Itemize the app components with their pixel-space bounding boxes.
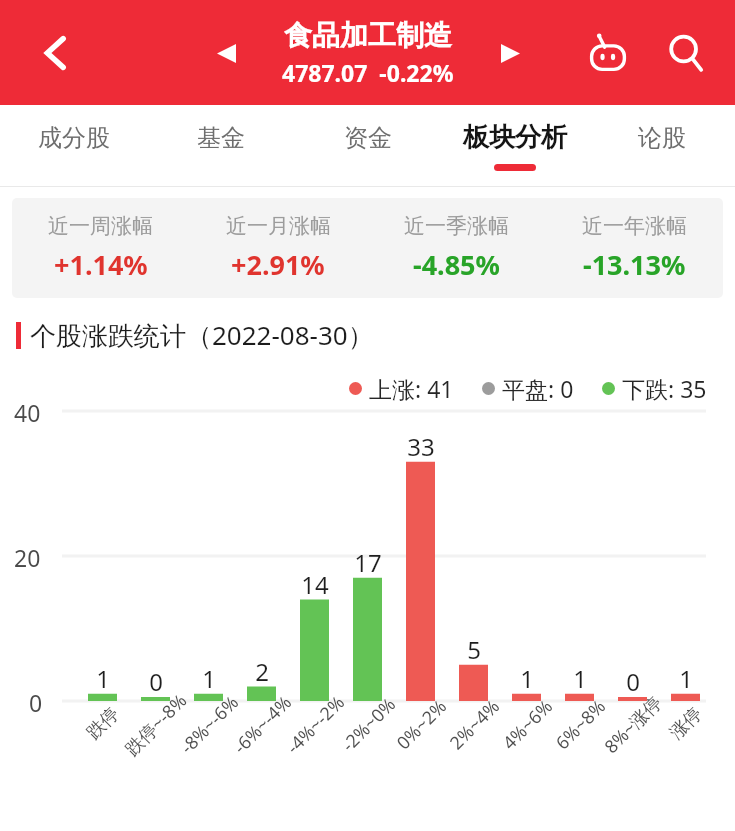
- staticText: 跌停~-8%: [120, 688, 192, 761]
- staticText: 0: [618, 665, 648, 698]
- button[interactable]: AI assistant: [579, 24, 637, 82]
- staticText: -13.13%: [583, 246, 686, 283]
- staticText: 近一周涨幅: [48, 213, 153, 239]
- button[interactable]: 近一季涨幅: [367, 213, 545, 283]
- staticText: 17: [353, 546, 383, 579]
- staticText: 4%~6%: [497, 694, 558, 755]
- staticText: 0: [29, 687, 43, 718]
- staticText: 下跌: 35: [622, 373, 707, 404]
- staticText: 2%~4%: [444, 694, 505, 755]
- staticText: 1: [671, 662, 701, 695]
- button[interactable]: 近一周涨幅: [12, 213, 189, 283]
- staticText: 资金: [344, 123, 392, 153]
- button[interactable]: Next sector: [487, 30, 533, 76]
- button[interactable]: 板块分析: [441, 105, 588, 187]
- button[interactable]: 平盘: 0: [482, 373, 574, 404]
- staticText: -4%~-2%: [281, 690, 350, 759]
- staticText: 上涨: 41: [369, 373, 454, 404]
- staticText: 2: [247, 655, 277, 688]
- button[interactable]: 基金: [147, 105, 294, 187]
- staticText: 个股涨跌统计（2022-08-30）: [30, 317, 374, 353]
- button[interactable]: Previous sector: [203, 30, 249, 76]
- staticText: 跌停: [82, 703, 124, 744]
- staticText: 平盘: 0: [502, 373, 574, 404]
- staticText: 14: [300, 568, 330, 601]
- staticText: 0%~2%: [391, 694, 452, 755]
- staticText: 20: [14, 542, 41, 573]
- staticText: 40: [14, 397, 41, 428]
- button[interactable]: 成分股: [0, 105, 147, 187]
- staticText: 近一季涨幅: [404, 213, 509, 239]
- staticText: 近一月涨幅: [226, 213, 331, 239]
- button[interactable]: 近一月涨幅: [189, 213, 367, 283]
- staticText: 食品加工制造: [284, 18, 452, 53]
- staticText: 1: [565, 662, 595, 695]
- staticText: 5: [459, 633, 489, 666]
- button[interactable]: 近一年涨幅: [545, 213, 723, 283]
- staticText: 1: [512, 662, 542, 695]
- button[interactable]: 资金: [294, 105, 441, 187]
- staticText: 板块分析: [463, 121, 567, 154]
- staticText: +2.91%: [231, 246, 325, 283]
- staticText: -8%~-6%: [175, 690, 244, 759]
- staticText: 8%~涨停: [599, 690, 667, 759]
- staticText: 成分股: [38, 123, 110, 153]
- staticText: 1: [194, 662, 224, 695]
- staticText: 4787.07 -0.22%: [282, 57, 454, 88]
- staticText: 涨停: [665, 703, 707, 744]
- staticText: 基金: [197, 123, 245, 153]
- button[interactable]: 论股: [588, 105, 735, 187]
- staticText: -2%~0%: [336, 692, 401, 757]
- button[interactable]: 上涨: 41: [349, 373, 454, 404]
- staticText: -6%~-4%: [228, 690, 297, 759]
- staticText: 1: [88, 662, 118, 695]
- staticText: 33: [406, 430, 436, 463]
- button[interactable]: 下跌: 35: [602, 373, 707, 404]
- button[interactable]: Back: [26, 23, 86, 83]
- staticText: 近一年涨幅: [582, 213, 687, 239]
- button[interactable]: Search: [657, 24, 715, 82]
- staticText: 论股: [638, 123, 686, 153]
- staticText: 0: [141, 665, 171, 698]
- staticText: 6%~8%: [550, 694, 611, 755]
- staticText: +1.14%: [54, 246, 148, 283]
- staticText: -4.85%: [413, 246, 500, 283]
